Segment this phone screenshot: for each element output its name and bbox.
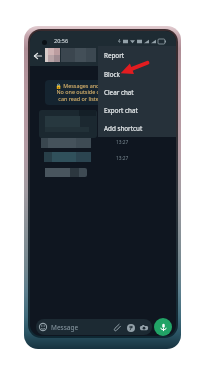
button[interactable]: Block xyxy=(98,65,176,83)
button[interactable]: Back xyxy=(31,49,45,63)
button[interactable]: Add shortcut xyxy=(98,119,176,137)
staticText: 13:27 xyxy=(116,155,129,162)
staticText: Add shortcut xyxy=(104,124,143,133)
button[interactable]: Payment xyxy=(126,323,135,332)
button[interactable]: Attach xyxy=(113,323,122,332)
button[interactable]: Voice message xyxy=(154,318,172,336)
staticText: Clear chat xyxy=(104,88,134,97)
button[interactable]: Clear chat xyxy=(98,83,176,101)
staticText: Report xyxy=(104,51,125,60)
staticText: 🔒 Messages and calls are end-to-end No o… xyxy=(47,82,159,103)
staticText: Block xyxy=(104,70,120,79)
staticText: 4 xyxy=(118,38,121,44)
button[interactable]: Export chat xyxy=(98,101,176,119)
button[interactable]: Message xyxy=(36,319,152,335)
staticText: 20:56 xyxy=(54,37,69,44)
staticText: 13:27 xyxy=(116,139,129,146)
staticText: Message xyxy=(51,323,79,332)
button[interactable]: Report xyxy=(98,46,176,65)
staticText: Export chat xyxy=(104,106,138,115)
button[interactable]: Camera xyxy=(139,323,148,332)
